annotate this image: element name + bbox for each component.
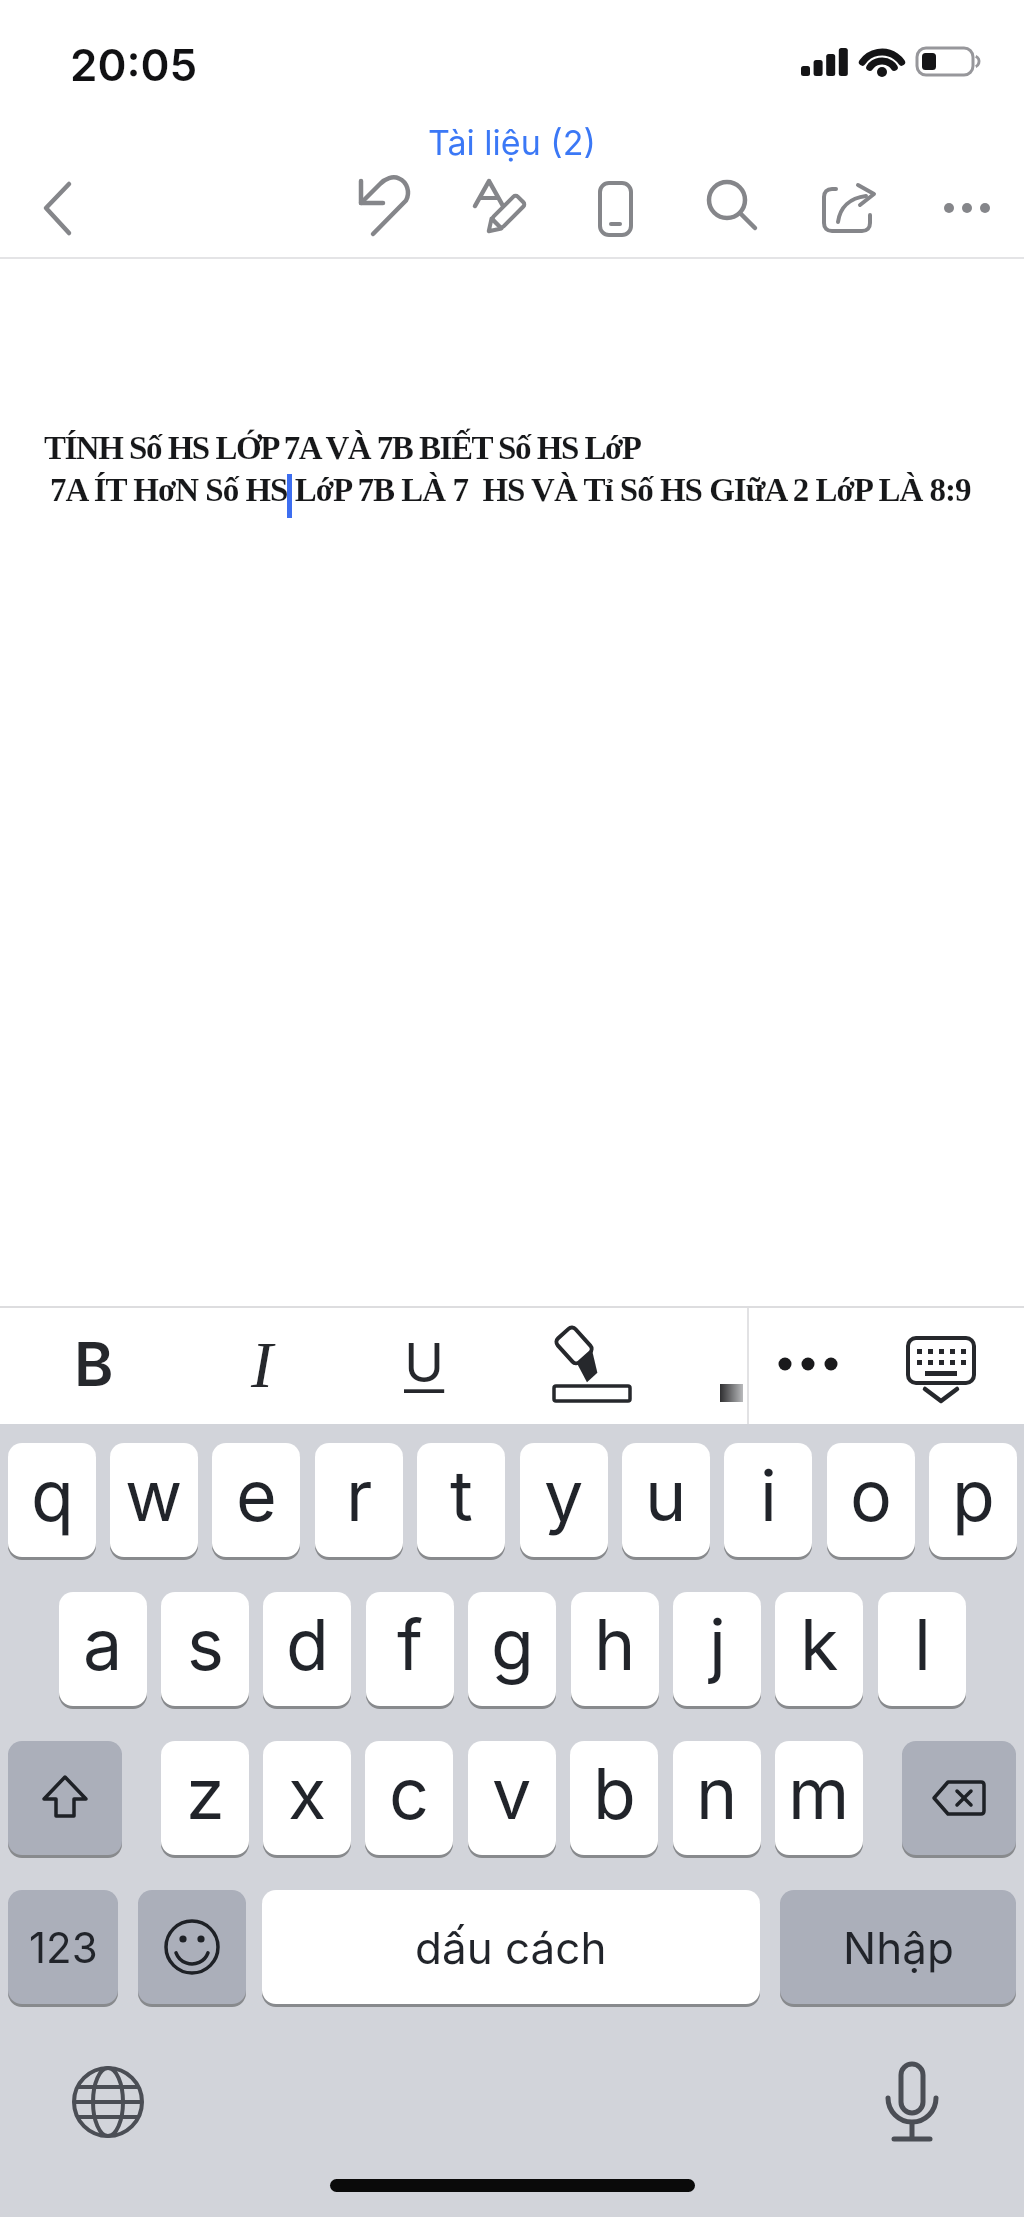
button[interactable]: q (8, 1443, 96, 1557)
staticText: Tài liệu (2) (428, 122, 596, 163)
button[interactable]: dấu cách (262, 1890, 760, 2004)
button[interactable]: g (468, 1592, 556, 1706)
button[interactable]: e (212, 1443, 300, 1557)
button[interactable] (760, 1324, 856, 1404)
button[interactable]: t (417, 1443, 505, 1557)
button[interactable]: 123 (8, 1890, 118, 2004)
button[interactable]: f (366, 1592, 454, 1706)
staticText: q (31, 1453, 74, 1538)
button[interactable]: I (220, 1324, 304, 1404)
staticText: 7A ÍT HơN Số HS LớP 7B LÀ 7 HS VÀ Tỉ Số … (50, 472, 971, 509)
button[interactable] (66, 2060, 150, 2144)
button[interactable]: Nhập (780, 1890, 1016, 2004)
staticText: TÍNH Số HS LỚP 7A VÀ 7B BIẾT Số HS LớP (44, 430, 641, 467)
staticText: r (346, 1453, 373, 1538)
button[interactable] (890, 1324, 990, 1408)
button[interactable]: a (59, 1592, 147, 1706)
staticText: b (593, 1751, 636, 1836)
button[interactable]: B (52, 1324, 136, 1404)
button[interactable] (138, 1890, 246, 2004)
button[interactable]: n (673, 1741, 761, 1855)
button[interactable]: i (724, 1443, 812, 1557)
staticText: e (236, 1453, 277, 1538)
staticText: z (186, 1751, 225, 1836)
staticText: d (286, 1602, 329, 1687)
staticText: f (397, 1602, 423, 1687)
button[interactable]: p (929, 1443, 1017, 1557)
button[interactable]: k (775, 1592, 863, 1706)
staticText: u (645, 1453, 687, 1538)
staticText: h (594, 1602, 636, 1687)
staticText: I (251, 1328, 273, 1401)
button[interactable] (902, 1741, 1016, 1855)
button[interactable]: b (570, 1741, 658, 1855)
staticText: m (788, 1751, 850, 1836)
staticText: i (760, 1453, 777, 1538)
button[interactable] (355, 180, 411, 236)
staticText: g (491, 1602, 534, 1687)
button[interactable]: m (775, 1741, 863, 1855)
staticText: y (544, 1453, 584, 1538)
staticText: dấu cách (415, 1921, 607, 1974)
button[interactable]: j (673, 1592, 761, 1706)
staticText: s (187, 1602, 224, 1687)
button[interactable] (938, 180, 994, 236)
staticText: x (288, 1751, 327, 1836)
button[interactable] (472, 180, 528, 236)
staticText: l (914, 1602, 931, 1687)
button[interactable]: s (161, 1592, 249, 1706)
staticText: o (850, 1453, 892, 1538)
staticText: c (389, 1751, 429, 1836)
staticText: 20:05 (70, 38, 198, 91)
button[interactable]: z (161, 1741, 249, 1855)
button[interactable]: w (110, 1443, 198, 1557)
staticText: t (450, 1453, 473, 1538)
button[interactable] (820, 180, 876, 236)
button[interactable]: y (520, 1443, 608, 1557)
button[interactable] (8, 1741, 122, 1855)
button[interactable] (548, 1320, 638, 1410)
staticText: w (125, 1453, 183, 1538)
staticText: B (74, 1328, 114, 1401)
button[interactable]: v (468, 1741, 556, 1855)
staticText: n (696, 1751, 738, 1836)
button[interactable]: d (263, 1592, 351, 1706)
staticText: k (800, 1602, 839, 1687)
staticText: v (492, 1751, 532, 1836)
button[interactable]: c (365, 1741, 453, 1855)
button[interactable]: h (571, 1592, 659, 1706)
button[interactable]: o (827, 1443, 915, 1557)
button[interactable]: u (622, 1443, 710, 1557)
staticText: U (404, 1330, 445, 1395)
staticText: p (952, 1453, 995, 1538)
button[interactable]: r (315, 1443, 403, 1557)
staticText: 123 (29, 1922, 98, 1973)
button[interactable] (30, 180, 86, 236)
staticText: Nhập (843, 1921, 954, 1974)
button[interactable]: x (263, 1741, 351, 1855)
button[interactable] (588, 180, 644, 236)
staticText: a (83, 1602, 123, 1687)
button[interactable] (700, 180, 756, 236)
button[interactable]: l (878, 1592, 966, 1706)
staticText: j (709, 1602, 726, 1687)
button[interactable] (870, 2056, 954, 2140)
button[interactable]: U (382, 1320, 466, 1404)
